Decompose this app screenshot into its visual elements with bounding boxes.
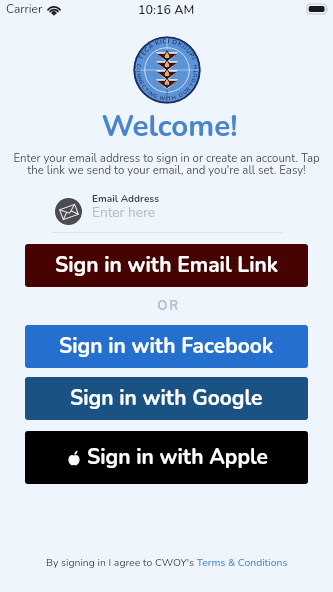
staticText: Sign in with Google (70, 384, 263, 413)
button[interactable]: Sign in with Apple (25, 431, 308, 484)
staticText: Enter here (92, 203, 155, 222)
staticText: Sign in with Apple (87, 443, 268, 472)
button[interactable]: Sign in with Facebook (25, 325, 308, 368)
button[interactable]: By signing in I agree to CWOY's Terms & … (46, 555, 288, 569)
staticText: Email Address (92, 192, 160, 206)
staticText: Enter your email address to sign in or c… (12, 150, 321, 178)
staticText: By signing in I agree to CWOY's Terms & … (46, 555, 288, 569)
staticText: Welcome! (101, 106, 238, 146)
staticText: OR (157, 297, 180, 315)
button[interactable]: Sign in with Email Link (25, 244, 308, 287)
staticText: Carrier (6, 1, 43, 17)
staticText: Sign in with Facebook (59, 332, 274, 361)
staticText: Sign in with Email Link (55, 251, 279, 280)
button[interactable]: Sign in with Google (25, 377, 308, 420)
staticText: 10:16 AM (138, 1, 195, 18)
